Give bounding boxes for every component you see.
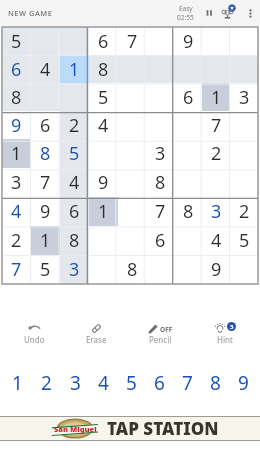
button[interactable]: 9 — [89, 168, 118, 197]
button[interactable] — [89, 139, 118, 168]
button[interactable] — [146, 27, 174, 55]
button[interactable]: 1 — [202, 83, 230, 111]
button[interactable] — [146, 55, 174, 83]
button[interactable]: More options — [241, 4, 259, 22]
button[interactable] — [89, 226, 118, 255]
button[interactable]: 6 — [174, 83, 202, 111]
button[interactable]: 3 — [146, 139, 174, 168]
button[interactable]: Pause — [198, 4, 216, 22]
button[interactable]: 6 — [31, 111, 60, 139]
button[interactable]: 2 — [60, 111, 89, 139]
button[interactable]: 8 — [89, 55, 118, 83]
button[interactable]: 8 — [174, 197, 202, 226]
button[interactable] — [60, 83, 89, 111]
button[interactable]: 4 — [89, 111, 118, 139]
button[interactable]: 7 — [2, 255, 31, 284]
button[interactable]: 3 — [2, 168, 31, 197]
button[interactable] — [230, 139, 258, 168]
button[interactable]: 9 — [202, 255, 230, 284]
button[interactable]: NEW GAME — [0, 3, 61, 23]
button[interactable] — [118, 83, 146, 111]
button[interactable]: 3 — [60, 255, 89, 284]
button[interactable] — [174, 168, 202, 197]
button[interactable] — [146, 83, 174, 111]
button[interactable]: 1 — [60, 55, 89, 83]
button[interactable]: Trophies — [217, 3, 237, 23]
button[interactable]: 3 — [61, 370, 89, 392]
button[interactable] — [174, 139, 202, 168]
button[interactable]: 3 — [206, 322, 244, 346]
button[interactable] — [230, 111, 258, 139]
button[interactable]: 8 — [2, 83, 31, 111]
button[interactable] — [118, 197, 146, 226]
button[interactable]: 1 — [31, 226, 60, 255]
button[interactable] — [230, 255, 258, 284]
button[interactable] — [230, 55, 258, 83]
button[interactable]: 5 — [117, 370, 145, 392]
button[interactable] — [31, 27, 60, 55]
button[interactable]: 9 — [31, 197, 60, 226]
button[interactable]: 8 — [60, 226, 89, 255]
button[interactable] — [146, 111, 174, 139]
button[interactable]: Erase — [78, 322, 115, 346]
button[interactable]: 7 — [146, 197, 174, 226]
button[interactable]: 6 — [89, 27, 118, 55]
button[interactable] — [230, 27, 258, 55]
button[interactable]: 1 — [2, 139, 31, 168]
button[interactable]: 5 — [31, 255, 60, 284]
button[interactable]: 6 — [146, 226, 174, 255]
button[interactable] — [146, 255, 174, 284]
button[interactable]: 2 — [2, 226, 31, 255]
button[interactable]: 6 — [145, 370, 173, 392]
button[interactable]: 7 — [173, 370, 201, 392]
button[interactable]: 7 — [118, 27, 146, 55]
button[interactable]: 5 — [60, 139, 89, 168]
button[interactable] — [174, 226, 202, 255]
button[interactable]: OFF — [140, 322, 181, 346]
button[interactable]: San Miguel — [0, 417, 260, 440]
button[interactable]: 8 — [201, 370, 229, 392]
button[interactable] — [118, 226, 146, 255]
button[interactable]: 4 — [202, 226, 230, 255]
button[interactable]: 4 — [60, 168, 89, 197]
button[interactable] — [230, 168, 258, 197]
button[interactable]: 8 — [146, 168, 174, 197]
button[interactable] — [174, 111, 202, 139]
button[interactable]: 2 — [32, 370, 61, 392]
button[interactable]: 2 — [230, 197, 258, 226]
button[interactable]: 5 — [2, 27, 31, 55]
button[interactable]: 2 — [202, 139, 230, 168]
button[interactable]: 5 — [89, 83, 118, 111]
button[interactable]: 1 — [3, 370, 32, 392]
button[interactable]: 3 — [202, 197, 230, 226]
button[interactable]: 9 — [229, 370, 257, 392]
button[interactable] — [118, 139, 146, 168]
button[interactable] — [202, 168, 230, 197]
button[interactable] — [118, 168, 146, 197]
button[interactable]: 4 — [89, 370, 117, 392]
button[interactable]: 8 — [31, 139, 60, 168]
button[interactable]: Undo — [16, 322, 53, 346]
button[interactable] — [60, 27, 89, 55]
button[interactable]: 3 — [230, 83, 258, 111]
button[interactable]: 9 — [2, 111, 31, 139]
button[interactable] — [174, 255, 202, 284]
button[interactable]: 6 — [60, 197, 89, 226]
button[interactable]: 4 — [31, 55, 60, 83]
button[interactable]: 7 — [202, 111, 230, 139]
button[interactable] — [118, 111, 146, 139]
button[interactable]: 4 — [2, 197, 31, 226]
button[interactable]: 1 — [89, 197, 118, 226]
button[interactable]: 7 — [31, 168, 60, 197]
staticText: Erase — [86, 334, 107, 345]
button[interactable]: 8 — [118, 255, 146, 284]
button[interactable]: 9 — [174, 27, 202, 55]
button[interactable]: 6 — [2, 55, 31, 83]
button[interactable]: 5 — [230, 226, 258, 255]
button[interactable] — [89, 255, 118, 284]
button[interactable] — [202, 27, 230, 55]
